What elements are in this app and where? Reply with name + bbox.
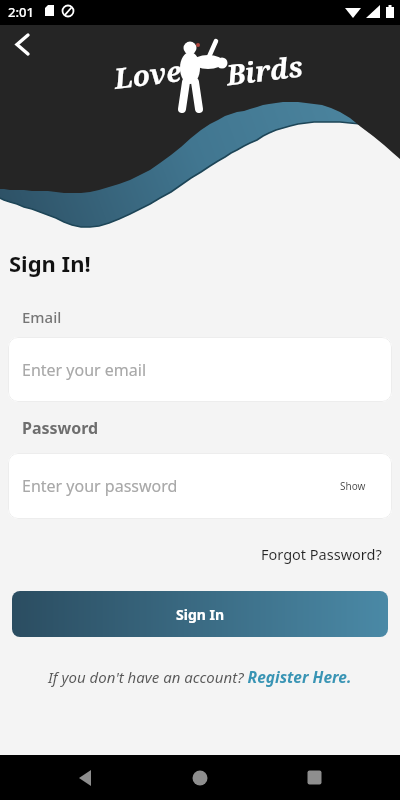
- staticText: Email: [22, 307, 62, 327]
- button[interactable]: Enter your email: [8, 337, 392, 402]
- button[interactable]: Forgot Password?: [261, 544, 382, 564]
- staticText: Birds: [224, 46, 305, 93]
- button[interactable]: [177, 755, 223, 800]
- staticText: Password: [22, 417, 99, 439]
- staticText: Sign In!: [9, 248, 91, 278]
- staticText: Love: [112, 51, 184, 97]
- button[interactable]: [6, 26, 44, 62]
- staticText: Enter your email: [22, 359, 147, 381]
- staticText: Enter your password: [22, 475, 178, 497]
- button[interactable]: Sign In: [12, 591, 388, 637]
- staticText: Forgot Password?: [261, 544, 382, 564]
- staticText: Show: [340, 479, 366, 493]
- staticText: If you don't have an account? Register H…: [48, 666, 352, 687]
- button[interactable]: Enter your password: [8, 453, 392, 519]
- staticText: 2:01: [8, 3, 34, 21]
- button[interactable]: [63, 755, 109, 800]
- button[interactable]: [291, 755, 337, 800]
- button[interactable]: Show: [340, 479, 366, 493]
- button[interactable]: If you don't have an account? Register H…: [0, 666, 400, 687]
- staticText: Sign In: [176, 605, 225, 624]
